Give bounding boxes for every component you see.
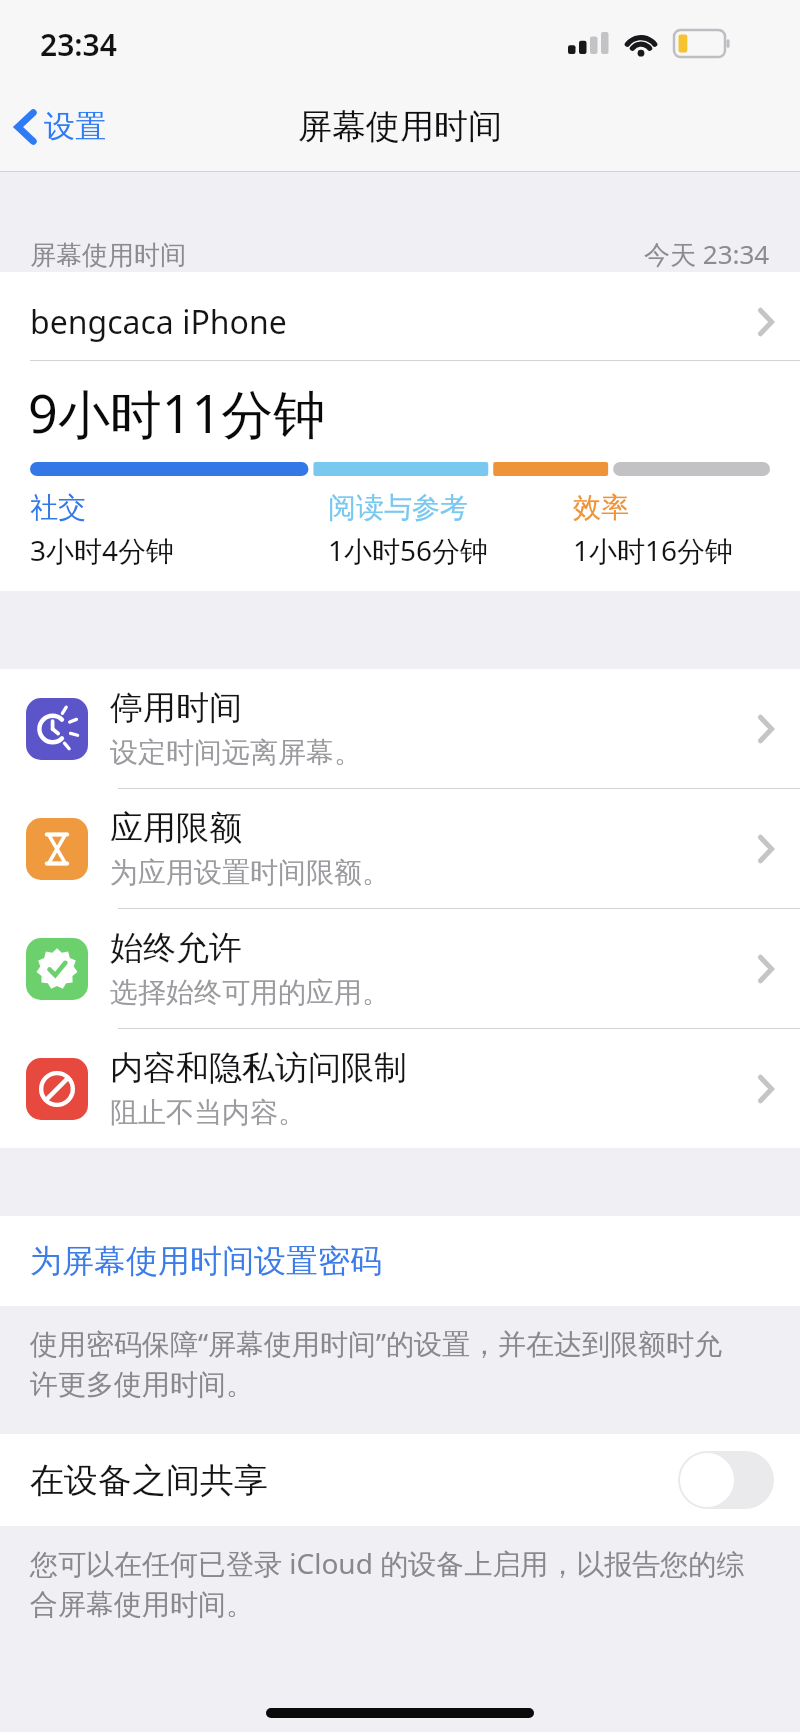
staticText: 使用密码保障“屏幕使用时间”的设置，并在达到限额时允 许更多使用时间。 bbox=[30, 1324, 782, 1402]
staticText: 您可以在任何已登录 iCloud 的设备上启用，以报告您的综 合屏幕使用时间。 bbox=[30, 1544, 782, 1622]
staticText: 为应用设置时间限额。 bbox=[110, 855, 390, 890]
staticText: 内容和隐私访问限制 bbox=[110, 1047, 407, 1089]
staticText: 停用时间 bbox=[110, 687, 242, 729]
button[interactable]: 停用时间 bbox=[0, 669, 800, 789]
staticText: 始终允许 bbox=[110, 927, 242, 969]
button[interactable]: 始终允许 bbox=[0, 909, 800, 1029]
staticText: 为屏幕使用时间设置密码 bbox=[30, 1241, 382, 1281]
staticText: 屏幕使用时间 bbox=[30, 239, 186, 272]
staticText: 屏幕使用时间 bbox=[298, 105, 502, 148]
staticText: 阅读与参考 bbox=[328, 490, 468, 525]
staticText: 9小时11分钟 bbox=[28, 377, 326, 448]
button[interactable]: 在设备之间共享 bbox=[0, 1434, 800, 1526]
staticText: bengcaca iPhone bbox=[30, 300, 287, 344]
staticText: 3小时4分钟 bbox=[30, 531, 175, 569]
button[interactable]: 为屏幕使用时间设置密码 bbox=[0, 1216, 800, 1306]
staticText: 23:34 bbox=[40, 24, 117, 65]
staticText: 阻止不当内容。 bbox=[110, 1095, 306, 1130]
staticText: 社交 bbox=[30, 490, 86, 525]
staticText: 今天 23:34 bbox=[644, 236, 770, 272]
staticText: 1小时56分钟 bbox=[328, 531, 489, 569]
staticText: 1小时16分钟 bbox=[573, 531, 734, 569]
button[interactable]: 设置 bbox=[0, 97, 122, 156]
staticText: 效率 bbox=[573, 490, 629, 525]
staticText: 在设备之间共享 bbox=[30, 1459, 268, 1502]
button[interactable]: 内容和隐私访问限制 bbox=[0, 1029, 800, 1148]
button[interactable]: 应用限额 bbox=[0, 789, 800, 909]
button[interactable]: bengcaca iPhone bbox=[0, 284, 800, 360]
staticText: 应用限额 bbox=[110, 807, 242, 849]
other: 在设备之间共享 bbox=[678, 1451, 774, 1509]
staticText: 设定时间远离屏幕。 bbox=[110, 735, 362, 770]
staticText: 选择始终可用的应用。 bbox=[110, 975, 390, 1010]
staticText: 设置 bbox=[44, 107, 106, 146]
